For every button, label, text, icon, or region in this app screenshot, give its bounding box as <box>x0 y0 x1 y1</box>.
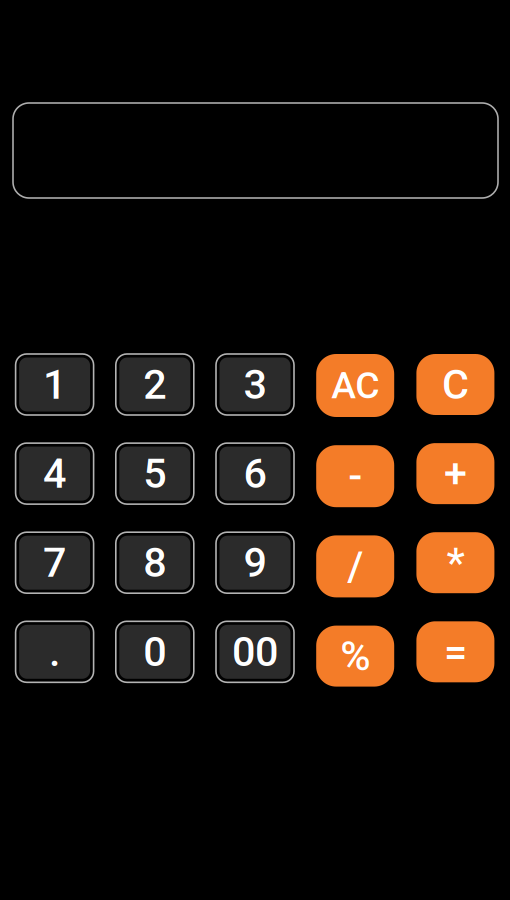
staticText: = <box>444 628 467 676</box>
staticText: C <box>442 360 469 409</box>
button[interactable]: 0 <box>116 621 194 682</box>
staticText: 0 <box>143 628 166 676</box>
button[interactable]: % <box>316 626 394 687</box>
staticText: 9 <box>243 538 266 587</box>
button[interactable]: = <box>416 621 494 682</box>
button[interactable]: 1 <box>16 354 94 415</box>
staticText: 7 <box>43 538 66 587</box>
staticText: % <box>340 632 370 680</box>
button[interactable]: 5 <box>116 443 194 504</box>
button[interactable]: 3 <box>216 354 294 415</box>
button[interactable]: 4 <box>16 443 94 504</box>
staticText: 1 <box>43 360 66 409</box>
staticText: 4 <box>43 449 66 498</box>
staticText: * <box>446 538 464 587</box>
staticText: 00 <box>232 628 278 676</box>
button[interactable]: . <box>16 621 94 682</box>
button[interactable]: 8 <box>116 532 194 593</box>
staticText: / <box>347 542 363 591</box>
staticText: 8 <box>143 538 166 587</box>
button[interactable]: * <box>416 532 494 593</box>
button[interactable]: + <box>416 443 494 504</box>
staticText: . <box>49 628 60 676</box>
button[interactable]: / <box>316 535 394 597</box>
button[interactable]: - <box>316 445 394 507</box>
staticText: 2 <box>143 360 166 409</box>
button[interactable]: 9 <box>216 532 294 593</box>
staticText: - <box>348 452 362 500</box>
button[interactable]: 6 <box>216 443 294 504</box>
staticText: 3 <box>243 360 266 409</box>
button[interactable]: 7 <box>16 532 94 593</box>
button[interactable]: C <box>416 354 494 415</box>
staticText: + <box>444 449 467 498</box>
button[interactable]: AC <box>316 354 394 417</box>
staticText: 5 <box>143 449 166 498</box>
button[interactable]: 00 <box>216 621 294 682</box>
staticText: AC <box>331 364 379 407</box>
staticText: 6 <box>243 449 266 498</box>
button[interactable]: 2 <box>116 354 194 415</box>
